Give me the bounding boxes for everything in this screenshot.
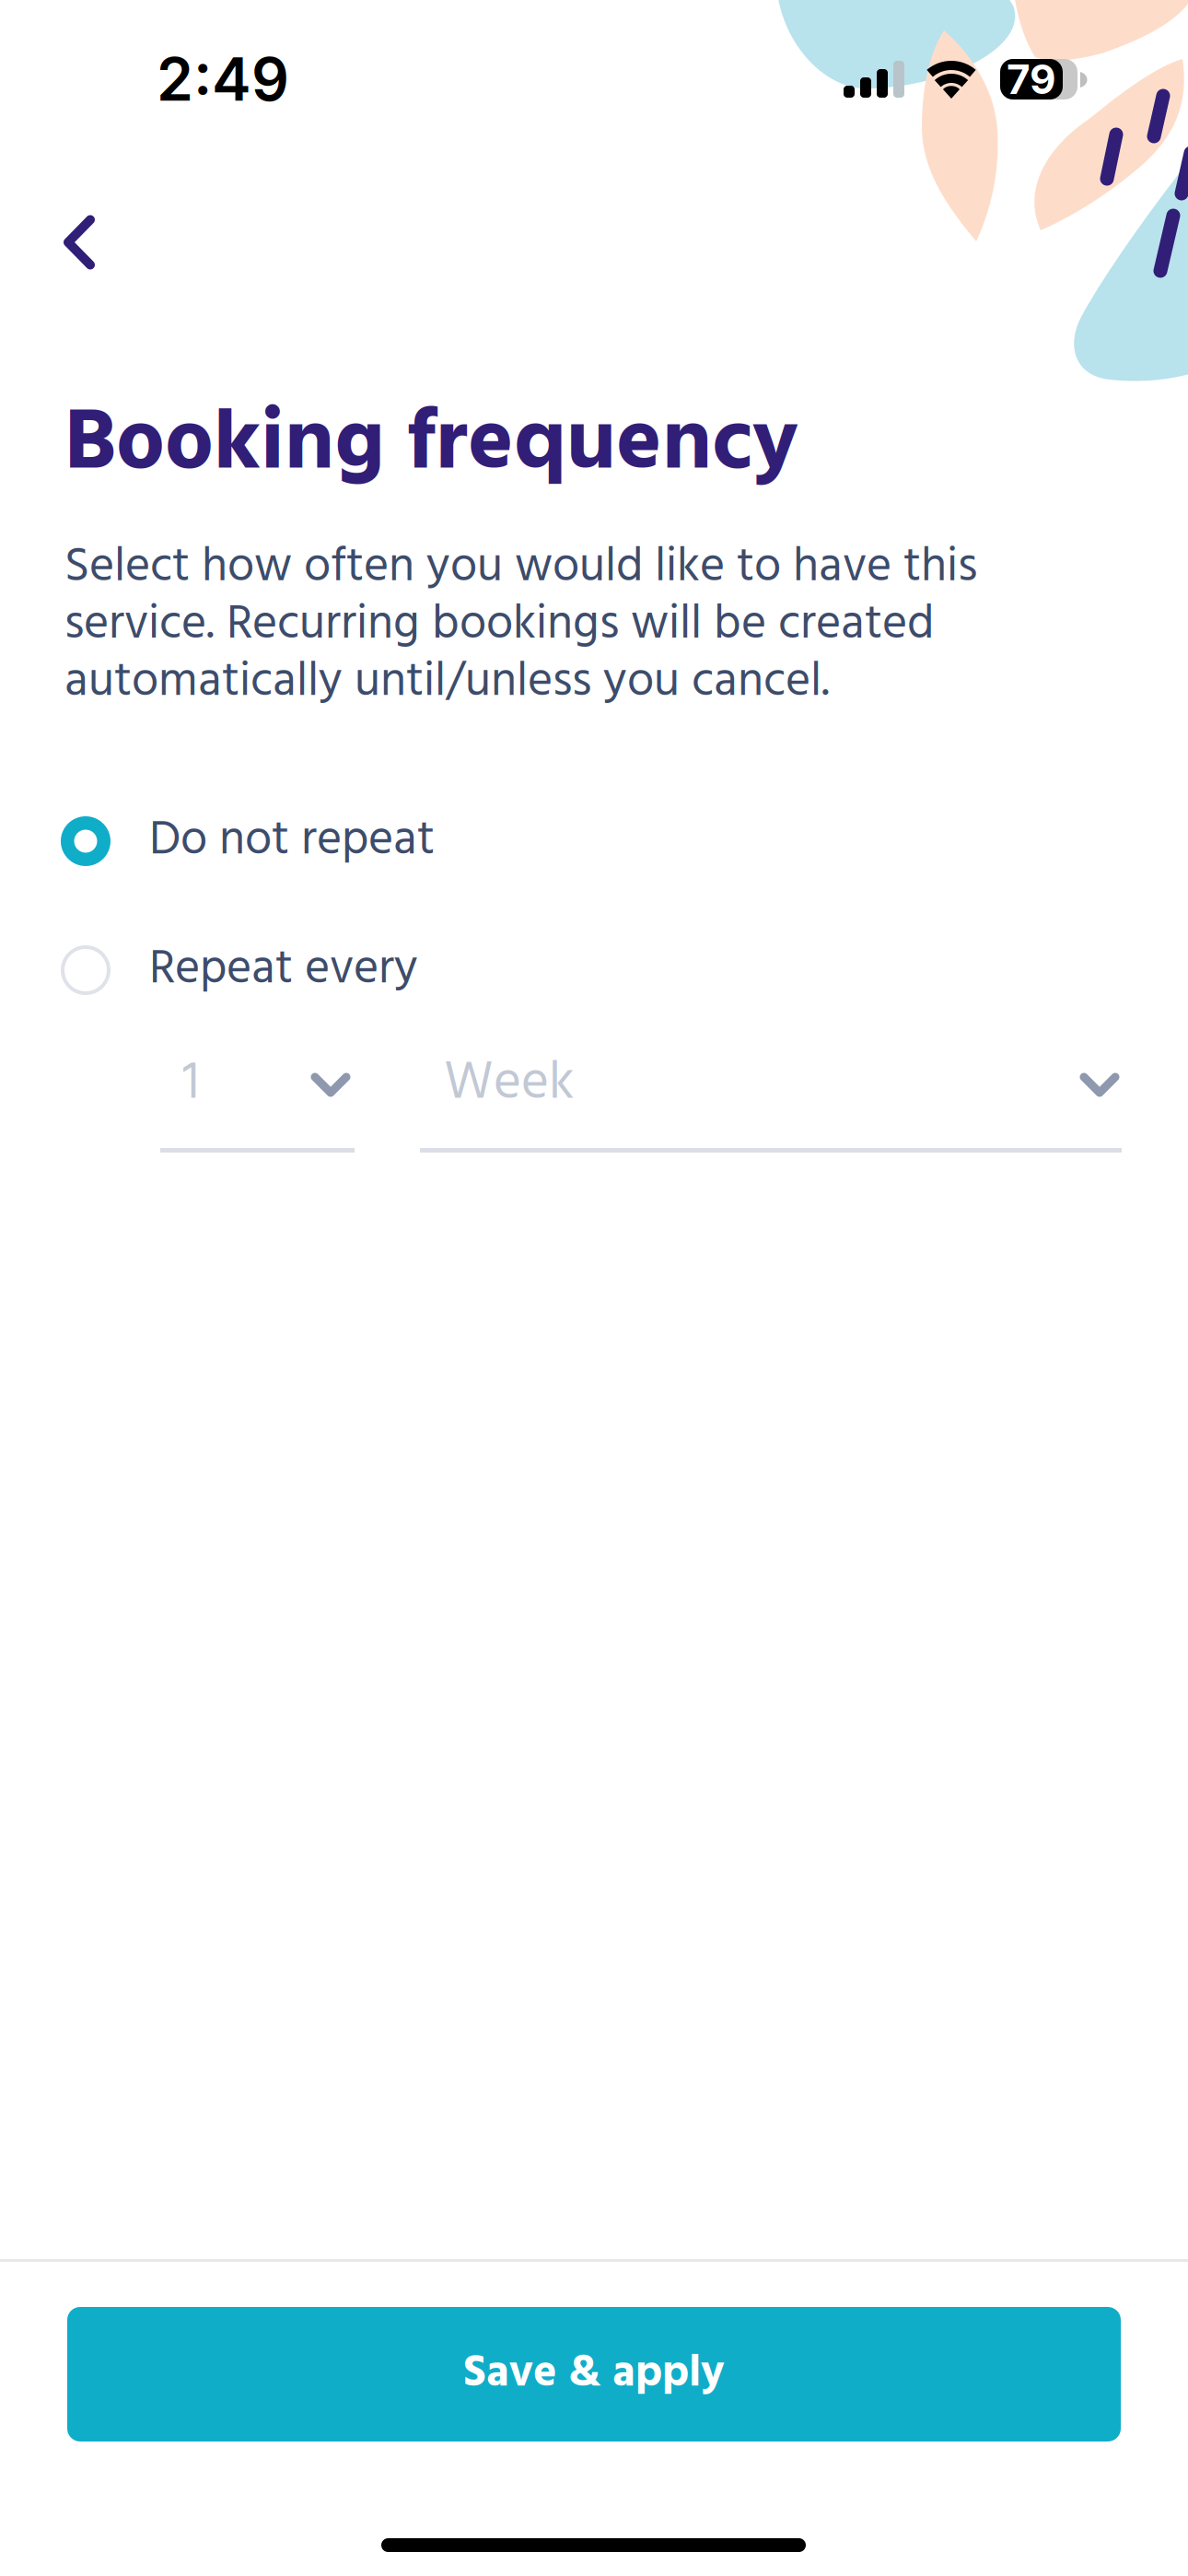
button[interactable]: Repeat every bbox=[37, 931, 1151, 1010]
staticText: 1 bbox=[182, 1042, 200, 1127]
button[interactable]: Do not repeat bbox=[37, 802, 1151, 881]
staticText: Week bbox=[444, 1042, 575, 1127]
button[interactable]: Back bbox=[20, 183, 138, 301]
staticText: Do not repeat bbox=[149, 803, 435, 880]
staticText: 79 bbox=[1007, 55, 1056, 104]
staticText: 2:49 bbox=[157, 44, 289, 115]
button[interactable]: 1 bbox=[160, 1045, 355, 1157]
button[interactable]: Save & apply bbox=[67, 2307, 1121, 2441]
staticText: Select how often you would like to have … bbox=[64, 530, 977, 721]
staticText: Repeat every bbox=[149, 932, 418, 1009]
staticText: Save & apply bbox=[463, 2339, 725, 2410]
staticText: Booking frequency bbox=[64, 377, 798, 514]
button[interactable]: Week bbox=[420, 1045, 1122, 1157]
